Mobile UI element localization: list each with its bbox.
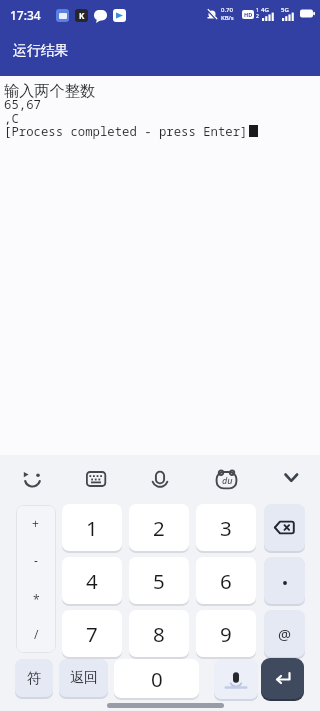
button[interactable]: @ [264,610,305,657]
staticText: 9 [220,620,232,648]
staticText: 0 [151,665,163,693]
staticText: / [34,626,39,642]
staticText: 65,67 [4,96,41,113]
staticText: 返回 [70,669,98,687]
button[interactable]: 返回 [59,659,108,697]
button[interactable] [16,505,56,653]
staticText: * [33,591,40,607]
button[interactable] [284,472,300,486]
button[interactable] [264,504,305,551]
staticText: @ [278,624,292,644]
button[interactable]: 7 [62,610,122,657]
staticText: 8 [153,620,165,648]
button[interactable]: 2 [129,504,189,551]
staticText: - [34,552,38,568]
button[interactable] [150,466,170,488]
button[interactable] [86,471,106,487]
button[interactable]: 4 [62,557,122,604]
staticText: du [222,474,233,486]
staticText: 符 [27,669,42,687]
button[interactable]: 8 [129,610,189,657]
button[interactable]: 9 [196,610,256,657]
staticText: 17:34 [10,7,41,23]
staticText: 5G [281,6,289,14]
button[interactable]: 1 [62,504,122,551]
staticText: 4 [86,567,98,595]
staticText: KB/s [221,14,234,22]
staticText: 5 [153,567,165,595]
staticText: 1 [86,514,98,542]
button[interactable]: 5 [129,557,189,604]
staticText: ,C [4,110,19,127]
staticText: 7 [86,620,98,648]
button[interactable] [261,658,304,699]
staticText: 0.70 [221,6,233,14]
staticText: + [32,515,39,531]
staticText: HD [244,11,253,18]
staticText: 6 [220,567,232,595]
staticText: [Process completed - press Enter] [4,123,248,140]
button[interactable] [215,467,238,490]
button[interactable]: 3 [196,504,256,551]
button[interactable]: 符 [15,659,53,697]
staticText: 1 [256,7,259,14]
button[interactable] [214,659,258,699]
staticText: 运行结果 [13,42,69,59]
button[interactable]: 0 [114,659,199,698]
staticText: 4G [261,6,269,14]
button[interactable]: 6 [196,557,256,604]
staticText: 输入两个整数 [4,81,96,100]
staticText: 3 [220,514,232,542]
staticText: 2 [256,13,259,20]
button[interactable] [22,465,44,489]
staticText: 2 [153,514,165,542]
staticText: K [79,10,85,21]
button[interactable] [264,557,305,604]
